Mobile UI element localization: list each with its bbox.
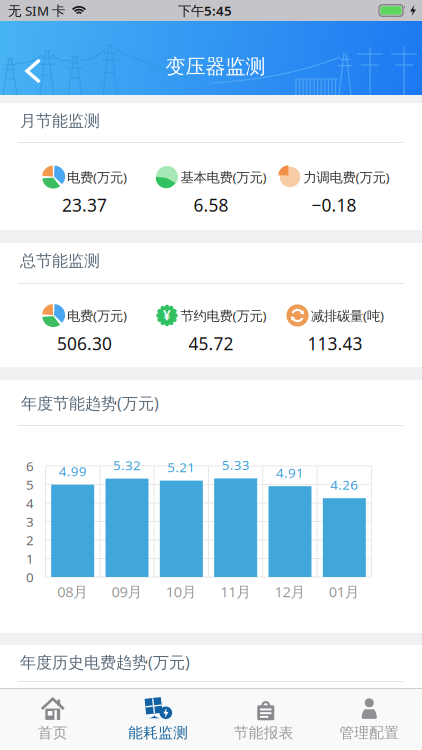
staticText: 电费(万元) <box>67 307 127 324</box>
staticText: 总节能监测 <box>20 251 100 271</box>
staticText: 113.43 <box>307 332 362 355</box>
staticText: 01月 <box>329 582 360 601</box>
staticText: −0.18 <box>311 193 356 216</box>
staticText: 23.37 <box>62 193 107 216</box>
staticText: 6 <box>26 457 34 475</box>
staticText: 3 <box>26 513 34 530</box>
button[interactable]: 节能报表 <box>211 689 316 750</box>
staticText: 节约电费(万元) <box>180 307 266 324</box>
staticText: 12月 <box>274 582 305 601</box>
staticText: 无 SIM 卡 <box>8 2 65 19</box>
staticText: 管理配置 <box>339 724 399 742</box>
staticText: 6.58 <box>193 193 228 216</box>
staticText: 电费(万元) <box>67 168 127 186</box>
staticText: 年度历史电费趋势(万元) <box>20 651 190 673</box>
button[interactable]: 首页 <box>0 689 105 750</box>
staticText: 能耗监测 <box>128 724 188 742</box>
staticText: 减排碳量(吨) <box>311 307 384 324</box>
staticText: 4.26 <box>330 476 358 493</box>
staticText: 节能报表 <box>234 724 294 742</box>
staticText: 4 <box>26 494 34 512</box>
staticText: 45.72 <box>188 332 233 355</box>
staticText: 4.91 <box>276 464 304 481</box>
staticText: 506.30 <box>57 332 112 355</box>
staticText: 变压器监测 <box>165 54 265 79</box>
staticText: 下午5:45 <box>178 2 232 19</box>
staticText: 5 <box>26 476 34 493</box>
staticText: 月节能监测 <box>20 111 100 131</box>
staticText: 5.21 <box>167 458 195 476</box>
staticText: 力调电费(万元) <box>303 168 389 186</box>
staticText: 0 <box>26 568 34 586</box>
staticText: 基本电费(万元) <box>180 168 266 186</box>
staticText: 5.32 <box>113 456 141 474</box>
staticText: 年度节能趋势(万元) <box>21 392 159 414</box>
button[interactable]: 返回 <box>0 50 57 92</box>
staticText: 10月 <box>166 582 197 601</box>
staticText: 11月 <box>220 582 251 601</box>
staticText: 5.33 <box>222 456 250 474</box>
staticText: 2 <box>26 531 34 549</box>
staticText: 1 <box>26 550 34 567</box>
staticText: 4.99 <box>59 462 87 480</box>
button[interactable]: 能耗监测 <box>105 689 211 750</box>
staticText: 09月 <box>111 582 142 601</box>
staticText: 首页 <box>38 724 68 742</box>
button[interactable]: 管理配置 <box>316 689 422 750</box>
staticText: 08月 <box>57 582 88 601</box>
staticText: ¥ <box>163 306 171 324</box>
